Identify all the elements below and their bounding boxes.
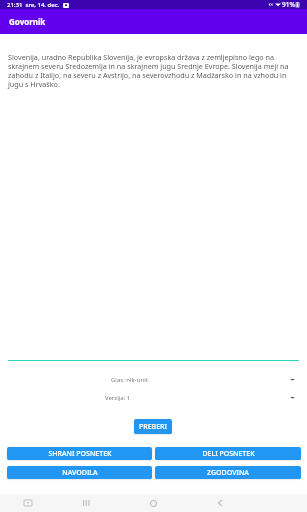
staticText: PREBERI xyxy=(139,422,167,432)
button[interactable]: SHRANI POSNETEK xyxy=(7,447,152,460)
staticText: Verzija: 1 xyxy=(105,394,131,402)
staticText: 21:31 sre, 14. dec. xyxy=(7,1,60,9)
button[interactable]: Glas: nlk-unit xyxy=(8,373,299,387)
staticText: SHRANI POSNETEK xyxy=(48,449,112,459)
staticText: ZGODOVINA xyxy=(207,468,249,478)
button[interactable]: DELI POSNETEK xyxy=(155,447,301,460)
staticText: Govornik xyxy=(9,16,46,27)
button[interactable]: Verzija: 1 xyxy=(8,391,299,405)
button[interactable]: Recents xyxy=(67,494,105,512)
staticText: Slovenija, uradno Republika Slovenija, j… xyxy=(8,52,299,89)
staticText: DELI POSNETEK xyxy=(202,449,255,459)
staticText: Glas: nlk-unit xyxy=(111,376,148,384)
button[interactable]: ZGODOVINA xyxy=(155,466,301,479)
staticText: 91% xyxy=(282,0,295,9)
staticText: NAVODILA xyxy=(62,468,98,478)
button[interactable]: PREBERI xyxy=(134,419,172,434)
button[interactable]: NAVODILA xyxy=(7,466,152,479)
button[interactable]: Hide keyboard xyxy=(9,494,46,512)
button[interactable]: Home xyxy=(134,494,172,512)
other: Silent mode xyxy=(268,2,273,7)
button[interactable]: Back xyxy=(201,494,239,512)
